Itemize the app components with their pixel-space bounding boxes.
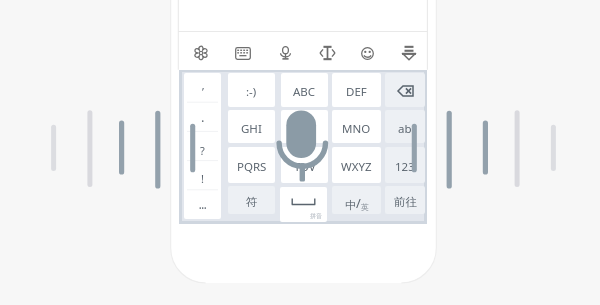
button[interactable]: Keyboard layout bbox=[222, 39, 264, 67]
staticText: GHI bbox=[241, 121, 262, 137]
staticText: ••• bbox=[199, 204, 207, 213]
staticText: 符 bbox=[246, 195, 258, 209]
button[interactable]: 中 bbox=[332, 186, 381, 214]
button[interactable]: Emoji bbox=[346, 39, 388, 67]
button[interactable]: Punctuation bbox=[184, 73, 221, 219]
button[interactable]: WXYZ bbox=[332, 147, 381, 183]
staticText: DEF bbox=[346, 84, 367, 100]
staticText: MNO bbox=[342, 121, 371, 137]
staticText: ’ bbox=[202, 84, 204, 99]
staticText: 中 bbox=[345, 198, 356, 212]
button[interactable]: Voice input bbox=[264, 39, 306, 67]
staticText: PQRS bbox=[237, 159, 267, 175]
staticText: / bbox=[356, 194, 361, 212]
staticText: 前往 bbox=[394, 195, 417, 209]
staticText: TUV bbox=[294, 159, 316, 175]
staticText: ABC bbox=[293, 84, 316, 100]
button[interactable]: Hide keyboard bbox=[388, 39, 430, 67]
staticText: · bbox=[201, 112, 205, 130]
button[interactable] bbox=[385, 73, 425, 107]
button[interactable]: Move cursor bbox=[306, 39, 348, 67]
button[interactable]: 123 bbox=[385, 147, 425, 183]
staticText: ab bbox=[398, 121, 412, 137]
button[interactable]: TUV bbox=[281, 147, 328, 183]
button[interactable]: 符 bbox=[228, 186, 275, 214]
staticText: WXYZ bbox=[341, 159, 372, 175]
button[interactable]: Settings bbox=[180, 39, 222, 67]
button[interactable]: GHI bbox=[228, 110, 275, 143]
button[interactable]: DEF bbox=[332, 73, 381, 107]
button[interactable]: MNO bbox=[332, 110, 381, 143]
staticText: 拼音 bbox=[310, 212, 322, 220]
button[interactable]: :-) bbox=[228, 73, 275, 107]
staticText: ! bbox=[201, 171, 204, 186]
staticText: :-) bbox=[246, 84, 257, 100]
button[interactable]: ABC bbox=[281, 73, 328, 107]
button[interactable]: Space bbox=[280, 187, 327, 222]
staticText: ? bbox=[200, 143, 205, 158]
button[interactable]: PQRS bbox=[228, 147, 275, 183]
button[interactable]: ab bbox=[385, 110, 425, 143]
staticText: 123 bbox=[395, 159, 415, 175]
button[interactable] bbox=[281, 110, 328, 143]
staticText: 英 bbox=[361, 202, 369, 212]
button[interactable]: 前往 bbox=[385, 186, 425, 214]
